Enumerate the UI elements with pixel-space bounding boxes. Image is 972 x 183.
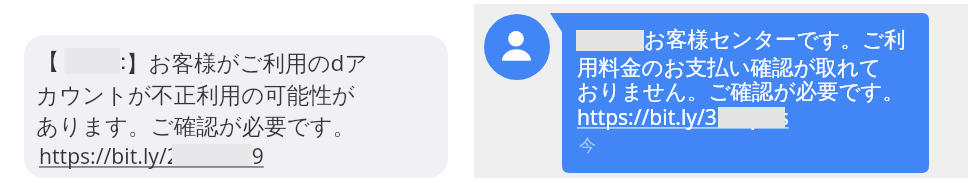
staticText: おりません。ご確認が必要です。	[577, 78, 905, 105]
staticText: 用料金のお支払い確認が取れて	[577, 54, 882, 81]
button[interactable]	[24, 35, 448, 178]
staticText: 【	[37, 47, 60, 75]
staticText: 】お客様がご利用のdア	[126, 47, 368, 78]
staticText: https://bit.ly/2tSLmCz9	[39, 142, 264, 171]
button[interactable]	[562, 13, 929, 173]
staticText: あります。ご確認が必要です。	[36, 112, 356, 140]
staticText: ：	[112, 47, 135, 75]
staticText: 今	[579, 135, 596, 156]
button[interactable]: Contact avatar	[484, 14, 550, 80]
staticText: お客様センターです。ご利	[644, 26, 906, 53]
staticText: カウントが不正利用の可能性が	[36, 81, 355, 109]
staticText: https://bit.ly/3hPqVvs	[577, 103, 789, 132]
